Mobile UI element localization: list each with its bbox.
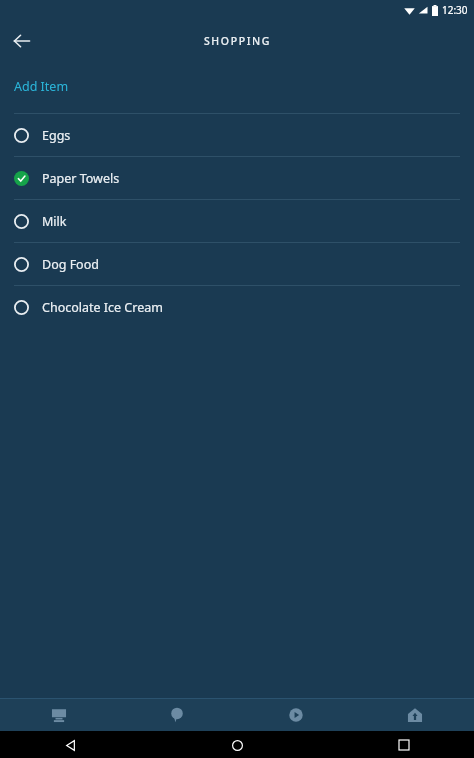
button[interactable]: Devices — [0, 699, 118, 731]
button[interactable]: Back — [2, 21, 42, 61]
staticText: Add Item — [14, 78, 69, 95]
button[interactable]: Paper Towels — [0, 157, 474, 199]
button[interactable]: Home — [355, 699, 474, 731]
staticText: 12:30 — [442, 3, 468, 17]
button[interactable]: Milk — [0, 200, 474, 242]
staticText: SHOPPING — [204, 34, 271, 48]
button[interactable]: Messages — [118, 699, 236, 731]
button[interactable]: Home — [224, 732, 250, 758]
staticText: Dog Food — [42, 256, 99, 273]
staticText: Milk — [42, 213, 67, 230]
button[interactable]: Chocolate Ice Cream — [0, 286, 474, 328]
staticText: Paper Towels — [42, 170, 120, 187]
staticText: Eggs — [42, 127, 71, 144]
button[interactable]: Recents — [391, 732, 417, 758]
button[interactable]: Add Item — [0, 76, 474, 97]
button[interactable]: Dog Food — [0, 243, 474, 285]
button[interactable]: Play — [236, 699, 355, 731]
button[interactable]: Eggs — [0, 114, 474, 156]
button[interactable]: Back — [57, 732, 83, 758]
staticText: Chocolate Ice Cream — [42, 299, 163, 316]
